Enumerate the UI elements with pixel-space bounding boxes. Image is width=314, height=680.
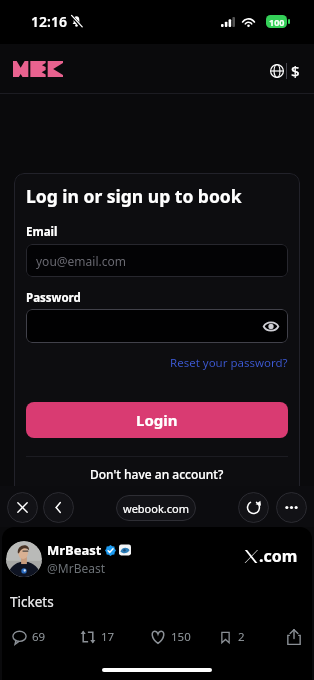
button[interactable]: you@email.com (26, 244, 288, 277)
staticText: Login (136, 410, 178, 430)
button[interactable]: Reload (238, 492, 269, 523)
button[interactable]: Show password (262, 317, 280, 335)
staticText: 69 (32, 629, 46, 645)
button[interactable]: Reposts (80, 629, 115, 645)
staticText: 150 (171, 629, 191, 645)
button[interactable]: More (276, 492, 307, 523)
button[interactable]: Reset your password? (170, 355, 288, 371)
button[interactable]: Likes (150, 629, 191, 645)
staticText: you@email.com (36, 253, 126, 269)
staticText: @MrBeast (47, 560, 106, 576)
button[interactable]: Bookmarks (219, 629, 245, 645)
button[interactable]: Share (284, 627, 304, 647)
staticText: 12:16 (31, 12, 67, 31)
staticText: 100 (269, 16, 285, 28)
staticText: Reset your password? (170, 355, 288, 371)
button[interactable]: Show password (26, 309, 288, 343)
button[interactable]: Replies (12, 629, 46, 645)
staticText: $ (291, 61, 300, 81)
staticText: Password (26, 290, 81, 306)
staticText: MrBeast (47, 541, 102, 559)
staticText: .com (259, 545, 298, 567)
staticText: 17 (101, 629, 115, 645)
button[interactable]: webook.com (116, 495, 196, 521)
staticText: Tickets (10, 593, 54, 611)
staticText: Log in or sign up to book (26, 184, 242, 208)
staticText: 2 (238, 629, 245, 645)
button[interactable]: Don't have an account? (90, 466, 224, 482)
staticText: webook.com (123, 501, 189, 516)
button[interactable]: Currency (289, 60, 302, 82)
button[interactable]: Login (26, 402, 288, 438)
button[interactable]: Back (43, 492, 74, 523)
button[interactable]: Language (266, 60, 288, 82)
button[interactable]: Close (7, 492, 38, 523)
staticText: Email (26, 224, 58, 240)
staticText: Don't have an account? (90, 466, 224, 482)
